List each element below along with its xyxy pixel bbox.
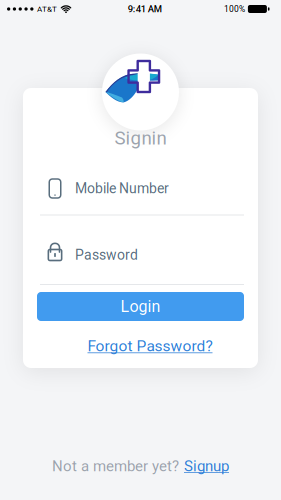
button[interactable]: Forgot Password?: [87, 337, 212, 355]
staticText: Signup: [184, 457, 229, 475]
staticText: AT&T: [37, 4, 57, 14]
staticText: 100%: [224, 4, 245, 14]
staticText: Login: [120, 297, 160, 316]
staticText: 9:41 AM: [128, 3, 162, 14]
button[interactable]: Signup: [184, 457, 229, 475]
button[interactable]: Password: [23, 244, 258, 266]
button[interactable]: Login: [37, 292, 244, 321]
staticText: Forgot Password?: [87, 337, 212, 355]
staticText: Signin: [114, 127, 166, 149]
staticText: Password: [75, 247, 138, 263]
staticText: Mobile Number: [75, 180, 169, 197]
staticText: Not a member yet?: [52, 457, 179, 475]
button[interactable]: Mobile Number: [23, 177, 258, 199]
